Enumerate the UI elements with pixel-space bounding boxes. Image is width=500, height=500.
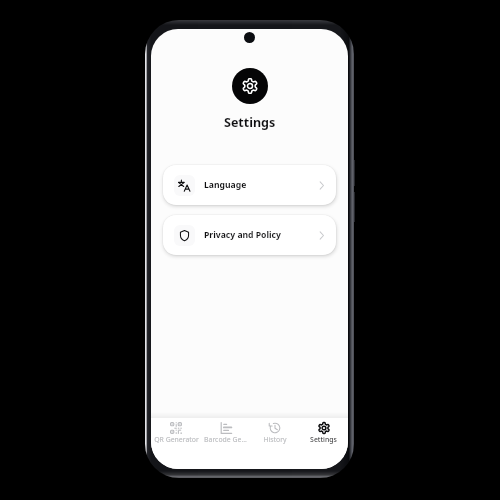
- staticText: Language: [204, 179, 247, 191]
- button[interactable]: QR Generator: [151, 418, 201, 469]
- button[interactable]: Language: [163, 165, 336, 205]
- staticText: History: [263, 435, 287, 444]
- staticText: QR Generator: [154, 435, 199, 444]
- staticText: Barcode Ge...: [204, 435, 247, 444]
- button[interactable]: Settings: [299, 418, 348, 469]
- button[interactable]: Privacy and Policy: [163, 215, 336, 255]
- staticText: Privacy and Policy: [204, 229, 281, 241]
- staticText: Settings: [310, 435, 337, 444]
- button[interactable]: Settings: [232, 68, 268, 104]
- staticText: Settings: [224, 114, 276, 131]
- button[interactable]: Barcode Ge...: [201, 418, 250, 469]
- button[interactable]: History: [250, 418, 299, 469]
